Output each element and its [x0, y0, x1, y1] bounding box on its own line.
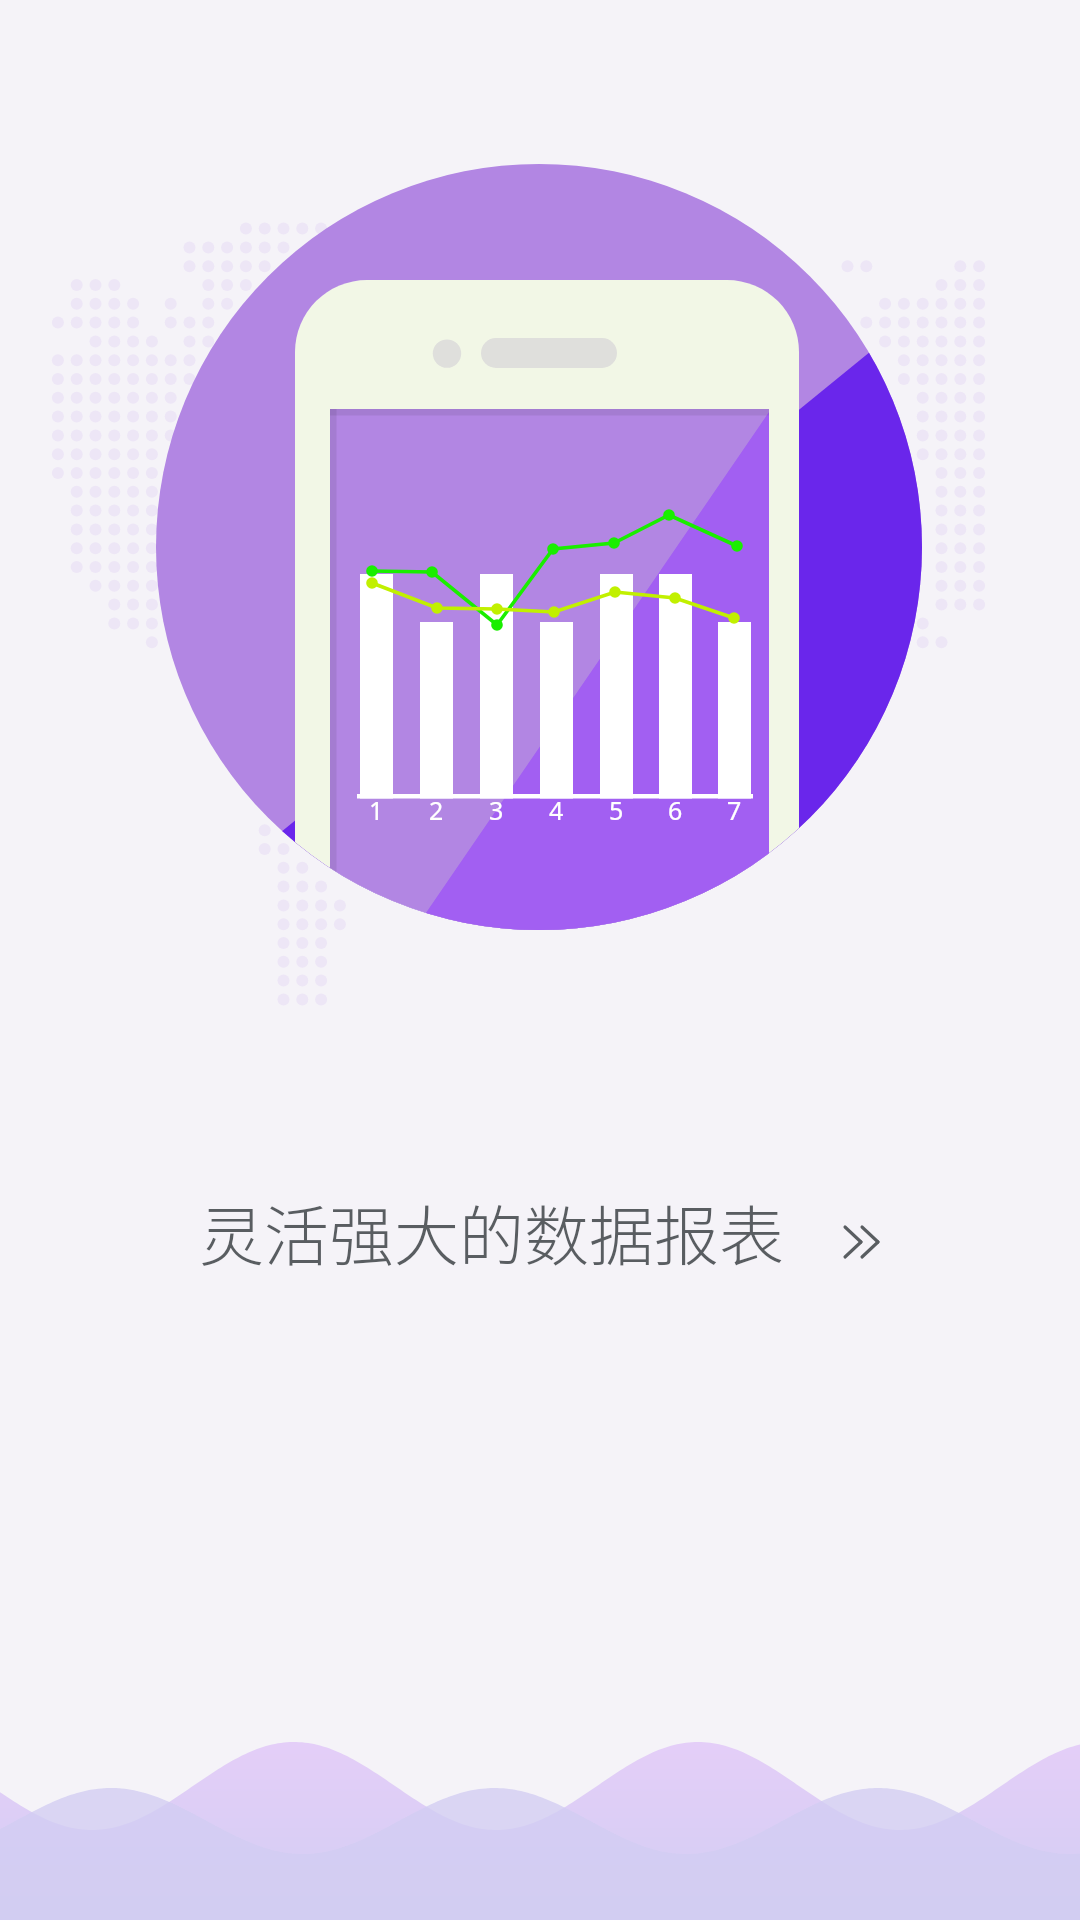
staticText: 灵活强大的数据报表 — [199, 1185, 785, 1279]
other: Next — [844, 1202, 896, 1262]
button[interactable]: 灵活强大的数据报表 — [185, 1177, 896, 1287]
